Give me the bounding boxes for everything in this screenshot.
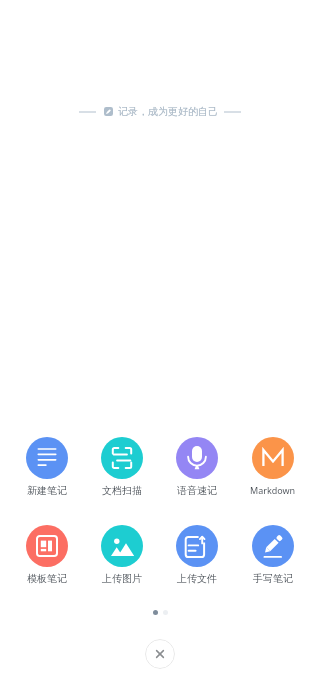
- staticText: 上传文件: [177, 572, 217, 585]
- button[interactable]: 上传文件: [159, 525, 235, 585]
- button[interactable]: Markdown: [235, 437, 311, 496]
- button[interactable]: 模板笔记: [9, 525, 84, 585]
- staticText: Markdown: [250, 484, 296, 496]
- staticText: 上传图片: [102, 572, 142, 585]
- staticText: 文档扫描: [102, 484, 142, 497]
- staticText: 模板笔记: [27, 572, 67, 585]
- staticText: 手写笔记: [253, 572, 293, 585]
- staticText: 新建笔记: [27, 484, 67, 497]
- button[interactable]: 文档扫描: [84, 437, 159, 497]
- button[interactable]: 语音速记: [159, 437, 235, 497]
- button[interactable]: 新建笔记: [9, 437, 84, 497]
- button[interactable]: 上传图片: [84, 525, 159, 585]
- staticText: 语音速记: [177, 484, 217, 497]
- staticText: 记录，成为更好的自己: [118, 105, 218, 118]
- button[interactable]: [145, 639, 175, 669]
- button[interactable]: 手写笔记: [235, 525, 311, 585]
